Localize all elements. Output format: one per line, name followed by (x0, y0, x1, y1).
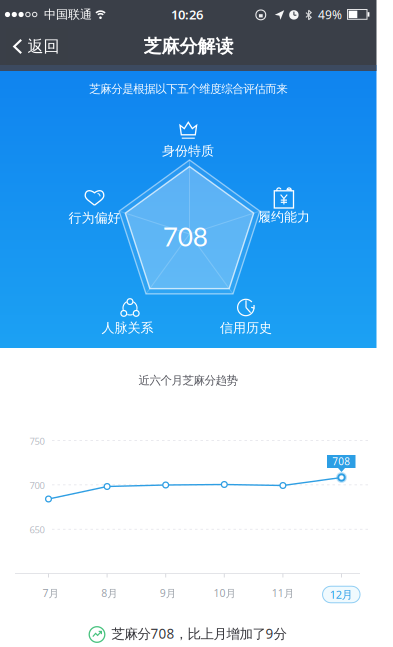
staticText: 身份特质 (162, 143, 214, 159)
staticText: 履约能力 (258, 209, 310, 225)
staticText: 9月 (160, 586, 177, 600)
staticText: 返回 (27, 36, 59, 56)
staticText: 700 (29, 479, 44, 492)
staticText: 近六个月芝麻分趋势 (138, 373, 237, 388)
staticText: 708 (163, 221, 208, 252)
staticText: 750 (29, 434, 44, 447)
button[interactable]: 返回 (0, 0, 393, 647)
staticText: 芝麻分解读 (143, 35, 233, 58)
staticText: 10:26 (171, 6, 203, 23)
staticText: 49% (318, 6, 342, 23)
staticText: 8月 (101, 586, 118, 600)
staticText: 芝麻分708，比上月增加了9分 (111, 624, 286, 643)
staticText: 708 (332, 455, 350, 468)
staticText: 信用历史 (220, 320, 272, 336)
button[interactable]: 12月 (323, 586, 360, 603)
staticText: 11月 (272, 586, 295, 600)
staticText: 行为偏好 (68, 210, 120, 226)
staticText: 芝麻分是根据以下五个维度综合评估而来 (89, 82, 287, 96)
staticText: 12月 (330, 587, 353, 602)
staticText: 650 (29, 523, 44, 536)
staticText: 7月 (42, 586, 59, 600)
staticText: 10月 (213, 586, 236, 600)
staticText: 人脉关系 (101, 320, 153, 336)
staticText: 中国联通 (44, 7, 92, 22)
